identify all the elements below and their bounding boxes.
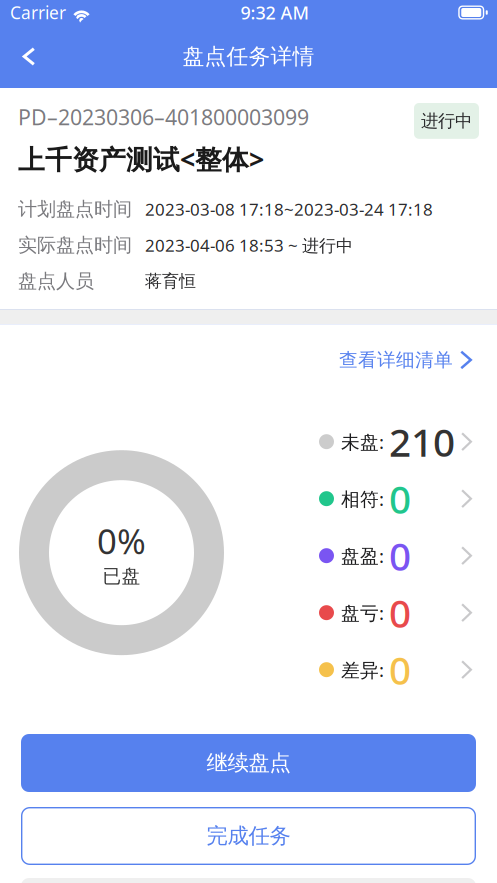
staticText: 继续盘点 <box>206 750 290 776</box>
staticText: 相符: <box>341 486 384 511</box>
staticText: 9:32 AM <box>240 0 309 25</box>
staticText: 2023-03-08 17:18~2023-03-24 17:18 <box>145 198 433 221</box>
button[interactable]: 盘盈: <box>319 540 472 572</box>
staticText: 0 <box>389 586 411 639</box>
button[interactable]: 盘亏: <box>319 597 472 629</box>
button[interactable]: 差异: <box>319 654 472 686</box>
button[interactable]: Back <box>7 34 51 78</box>
staticText: 蒋育恒 <box>145 270 196 292</box>
staticText: PD–20230306–401800003099 <box>18 102 309 131</box>
staticText: 未盘: <box>341 429 384 454</box>
staticText: 计划盘点时间 <box>18 197 132 221</box>
staticText: 0 <box>389 472 411 525</box>
staticText: 实际盘点时间 <box>18 233 132 257</box>
staticText: 进行中 <box>421 110 472 132</box>
staticText: 查看详细清单 <box>339 348 453 372</box>
staticText: 盘点任务详情 <box>182 43 314 70</box>
staticText: 盘亏: <box>341 600 384 625</box>
staticText: 完成任务 <box>206 823 290 849</box>
staticText: 210 <box>389 415 455 468</box>
staticText: 已盘 <box>102 564 140 588</box>
button[interactable]: 查看详细清单 <box>339 341 472 379</box>
staticText: 0% <box>97 517 146 564</box>
staticText: Carrier <box>10 1 66 24</box>
staticText: 2023-04-06 18:53 ~ 进行中 <box>145 234 353 257</box>
staticText: 盘点人员 <box>18 269 94 293</box>
button[interactable]: 相符: <box>319 483 472 515</box>
staticText: 0 <box>389 529 411 582</box>
staticText: 上千资产测试<整体> <box>18 141 264 177</box>
button[interactable]: 继续盘点 <box>21 734 476 792</box>
staticText: 盘盈: <box>341 543 384 568</box>
staticText: 差异: <box>341 657 384 682</box>
button[interactable]: 完成任务 <box>21 807 476 865</box>
staticText: 0 <box>389 643 411 696</box>
button[interactable]: 未盘: <box>319 426 472 458</box>
